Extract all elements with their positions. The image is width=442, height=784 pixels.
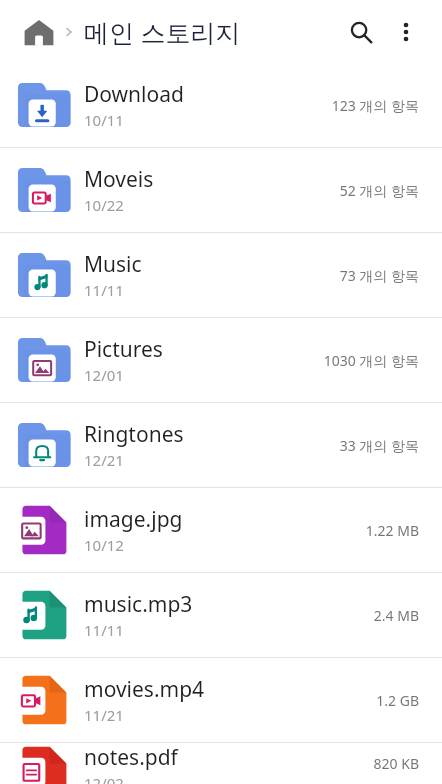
button[interactable]: image.jpg — [0, 488, 442, 572]
staticText: image.jpg — [84, 505, 183, 534]
staticText: 33 개의 항목 — [339, 436, 419, 455]
staticText: Music — [84, 250, 142, 279]
staticText: 820 KB — [373, 754, 419, 773]
staticText: movies.mp4 — [84, 675, 205, 704]
staticText: 2.4 MB — [373, 606, 419, 625]
button[interactable]: movies.mp4 — [0, 658, 442, 742]
staticText: 12/02 — [84, 773, 124, 784]
staticText: 12/01 — [84, 365, 124, 385]
button[interactable]: Music — [0, 233, 442, 317]
staticText: 11/11 — [84, 620, 124, 640]
button[interactable]: notes.pdf — [0, 743, 442, 784]
staticText: Pictures — [84, 335, 163, 364]
staticText: 123 개의 항목 — [331, 96, 419, 115]
staticText: Moveis — [84, 165, 154, 194]
staticText: 73 개의 항목 — [339, 266, 419, 285]
staticText: 메인 스토리지 — [84, 15, 241, 49]
staticText: 1.2 GB — [376, 691, 419, 710]
button[interactable]: music.mp3 — [0, 573, 442, 657]
staticText: 12/21 — [84, 450, 124, 470]
staticText: 1.22 MB — [365, 521, 419, 540]
staticText: notes.pdf — [84, 743, 178, 772]
button[interactable]: Moveis — [0, 148, 442, 232]
staticText: 11/21 — [84, 705, 124, 725]
staticText: music.mp3 — [84, 590, 193, 619]
button[interactable]: Search — [338, 9, 384, 55]
button[interactable]: More options — [384, 10, 428, 54]
staticText: 10/12 — [84, 535, 124, 555]
button[interactable]: Home — [20, 13, 58, 51]
button[interactable]: Ringtones — [0, 403, 442, 487]
staticText: 11/11 — [84, 280, 124, 300]
staticText: 10/11 — [84, 110, 124, 130]
button[interactable]: Pictures — [0, 318, 442, 402]
staticText: 1030 개의 항목 — [323, 351, 419, 370]
button[interactable]: Download — [0, 63, 442, 147]
staticText: Ringtones — [84, 420, 184, 449]
staticText: 10/22 — [84, 195, 124, 215]
staticText: 52 개의 항목 — [339, 181, 419, 200]
staticText: Download — [84, 80, 184, 109]
